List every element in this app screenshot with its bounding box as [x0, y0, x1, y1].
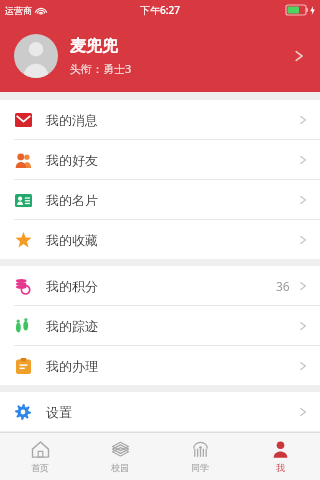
staticText: 36	[276, 278, 290, 294]
button[interactable]: 我的积分	[0, 266, 320, 305]
staticText: 首页	[31, 462, 49, 473]
button[interactable]: 麦兜兜	[0, 20, 320, 92]
button[interactable]: 我的踪迹	[0, 306, 320, 345]
button[interactable]: 我的名片	[0, 180, 320, 219]
staticText: 我的消息	[46, 112, 98, 128]
staticText: 下午6:27	[140, 3, 180, 17]
button[interactable]: 设置	[0, 392, 320, 431]
staticText: 同学	[191, 462, 209, 473]
staticText: 头衔：勇士3	[70, 61, 132, 76]
staticText: 我的好友	[46, 152, 98, 168]
button[interactable]: 我的办理	[0, 346, 320, 385]
staticText: 我的办理	[46, 358, 98, 374]
staticText: 我的积分	[46, 278, 98, 294]
button[interactable]: 我	[240, 433, 320, 480]
staticText: 我的踪迹	[46, 318, 98, 334]
button[interactable]: 我的好友	[0, 140, 320, 179]
staticText: 校园	[111, 462, 129, 473]
staticText: 麦兜兜	[70, 36, 118, 56]
button[interactable]: 我的消息	[0, 100, 320, 139]
button[interactable]: 首页	[0, 433, 80, 480]
other: 查看个人资料	[292, 49, 306, 63]
button[interactable]: 校园	[80, 433, 160, 480]
staticText: 我的名片	[46, 192, 98, 208]
staticText: 我	[276, 462, 285, 473]
button[interactable]: 我的收藏	[0, 220, 320, 259]
button[interactable]: 同学	[160, 433, 240, 480]
staticText: 我的收藏	[46, 232, 98, 248]
staticText: 运营商	[5, 5, 32, 16]
staticText: 设置	[46, 404, 72, 420]
